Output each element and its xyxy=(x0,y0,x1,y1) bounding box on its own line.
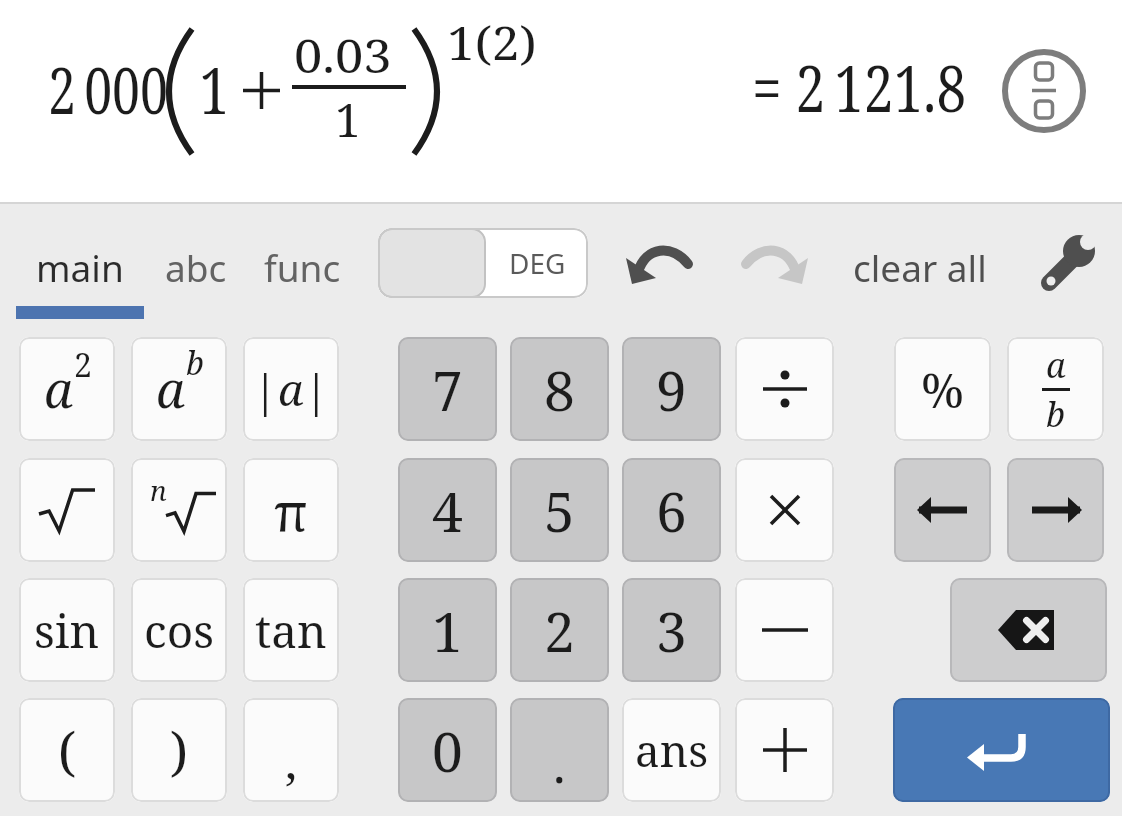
staticText: a xyxy=(156,355,185,423)
button[interactable]: 6 xyxy=(622,458,721,562)
staticText: func xyxy=(264,242,341,292)
button[interactable]: ans xyxy=(622,698,721,802)
staticText: 1 xyxy=(432,593,463,668)
staticText: tan xyxy=(255,599,327,662)
staticText: 1 xyxy=(199,46,230,133)
staticText: a xyxy=(44,355,73,423)
staticText: DEG xyxy=(509,244,566,282)
staticText: a xyxy=(278,359,304,419)
staticText: n xyxy=(150,471,167,509)
button[interactable]: main xyxy=(16,234,144,300)
staticText: ans xyxy=(635,720,708,780)
button[interactable]: 8 xyxy=(510,337,609,441)
button[interactable]: abc xyxy=(152,234,240,300)
button[interactable]: 3 xyxy=(622,578,721,682)
button[interactable]: 0 xyxy=(398,698,497,802)
staticText: 2 xyxy=(74,343,92,387)
button[interactable] xyxy=(893,698,1110,802)
staticText: 0.03 xyxy=(294,24,392,87)
button[interactable]: π xyxy=(243,458,339,562)
staticText: ) xyxy=(170,715,188,786)
staticText: b xyxy=(186,341,204,385)
button[interactable]: | xyxy=(243,337,339,441)
button[interactable]: 1 xyxy=(398,578,497,682)
button[interactable]: % xyxy=(894,337,991,441)
button[interactable]: ) xyxy=(131,698,227,802)
button[interactable]: cos xyxy=(131,578,227,682)
staticText: sin xyxy=(34,599,100,662)
button[interactable]: a xyxy=(131,337,227,441)
staticText: b xyxy=(1046,391,1066,437)
button[interactable] xyxy=(740,238,808,290)
staticText: . xyxy=(553,730,566,798)
button[interactable]: DEG xyxy=(378,228,588,298)
staticText: | xyxy=(304,359,329,419)
staticText: 2 xyxy=(544,593,575,668)
staticText: 2 000 xyxy=(48,46,168,133)
button[interactable] xyxy=(1038,234,1096,294)
staticText: clear all xyxy=(853,242,987,292)
staticText: , xyxy=(285,728,298,793)
staticText: 6 xyxy=(656,473,687,548)
button[interactable]: 5 xyxy=(510,458,609,562)
button[interactable]: 7 xyxy=(398,337,497,441)
button[interactable] xyxy=(735,337,834,441)
button[interactable] xyxy=(735,458,834,562)
button[interactable]: . xyxy=(510,698,609,802)
staticText: 9 xyxy=(656,352,687,427)
button[interactable]: a xyxy=(19,337,115,441)
staticText: | xyxy=(253,359,278,419)
button[interactable]: clear all xyxy=(840,236,1000,298)
button[interactable] xyxy=(735,578,834,682)
button[interactable] xyxy=(735,698,834,802)
button[interactable]: tan xyxy=(243,578,339,682)
staticText: 4 xyxy=(432,473,463,548)
staticText: main xyxy=(36,242,124,292)
staticText: 1(2) xyxy=(447,12,537,73)
button[interactable]: n xyxy=(131,458,227,562)
staticText: 3 xyxy=(656,593,687,668)
staticText: 7 xyxy=(432,352,463,427)
staticText: 5 xyxy=(544,473,575,548)
button[interactable]: func xyxy=(252,234,352,300)
staticText: a xyxy=(1046,342,1066,388)
staticText: ( xyxy=(58,715,76,786)
staticText: % xyxy=(921,357,965,422)
staticText: 0 xyxy=(432,713,463,788)
button[interactable] xyxy=(1007,458,1104,562)
button[interactable]: 4 xyxy=(398,458,497,562)
button[interactable]: sin xyxy=(19,578,115,682)
staticText: cos xyxy=(144,599,214,662)
staticText: 1 xyxy=(335,88,361,151)
button[interactable] xyxy=(950,578,1107,682)
button[interactable]: a xyxy=(1007,337,1104,441)
staticText: = 2 121.8 xyxy=(752,44,966,131)
button[interactable]: ( xyxy=(19,698,115,802)
staticText: abc xyxy=(165,242,227,292)
button[interactable]: 9 xyxy=(622,337,721,441)
button[interactable] xyxy=(894,458,991,562)
button[interactable] xyxy=(626,238,694,290)
staticText: π xyxy=(274,475,308,546)
button[interactable] xyxy=(1002,49,1086,133)
button[interactable]: 2 xyxy=(510,578,609,682)
button[interactable] xyxy=(19,458,115,562)
button[interactable]: , xyxy=(243,698,339,802)
staticText: 8 xyxy=(544,352,575,427)
